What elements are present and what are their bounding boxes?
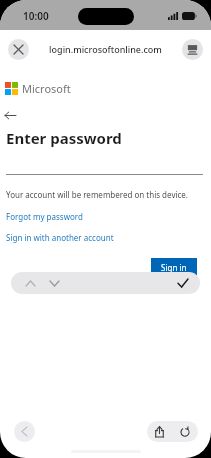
button[interactable]: Back	[14, 421, 35, 442]
staticText: Your account will be remembered on this …	[6, 189, 189, 200]
button[interactable]: Sign in	[151, 258, 197, 276]
button[interactable]: Sign in with another account	[6, 232, 114, 243]
button[interactable]: Page settings	[182, 39, 203, 60]
button[interactable]: Share	[147, 421, 172, 442]
staticText: login.microsoftonline.com	[49, 43, 162, 55]
staticText: Enter password	[6, 128, 122, 148]
staticText: Microsoft	[22, 81, 71, 96]
staticText: Sign in	[161, 262, 187, 273]
button[interactable]: Forgot my password	[6, 211, 83, 222]
staticText: Sign in with another account	[6, 232, 114, 243]
button[interactable]: Close	[8, 39, 29, 60]
button[interactable]: Previous field	[21, 274, 39, 292]
staticText: 10:00	[23, 9, 49, 23]
staticText: Forgot my password	[6, 211, 83, 222]
button[interactable]: Done	[174, 274, 192, 292]
button[interactable]: Next field	[45, 274, 63, 292]
button[interactable]: Back	[5, 108, 23, 122]
button[interactable]: Reload	[172, 421, 198, 442]
